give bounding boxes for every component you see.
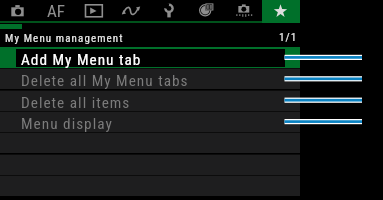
staticText: Delete all items	[21, 94, 131, 112]
button[interactable]: Playback tab	[75, 0, 112, 22]
staticText: AF	[47, 1, 65, 21]
button[interactable]: Autofocus tab	[37, 0, 74, 22]
button[interactable]: Custom functions tab	[187, 0, 224, 22]
staticText: Menu display	[21, 115, 113, 133]
button[interactable]: Add My Menu tab	[0, 47, 300, 68]
staticText: My Menu management	[5, 32, 124, 45]
button[interactable]: Wireless settings tab	[112, 0, 149, 22]
button[interactable]: Delete all items	[0, 90, 300, 111]
staticText: Delete all My Menu tabs	[21, 72, 189, 90]
button[interactable]: Setup tab	[150, 0, 187, 22]
button[interactable]: My Menu tab	[262, 0, 299, 22]
staticText: Add My Menu tab	[21, 51, 142, 69]
button[interactable]: Shooting settings tab	[0, 0, 37, 22]
staticText: 1/1	[279, 31, 298, 44]
button[interactable]: My Menu camera tab	[224, 0, 261, 22]
button[interactable]: Menu display	[0, 111, 300, 132]
button[interactable]: Delete all My Menu tabs	[0, 68, 300, 89]
